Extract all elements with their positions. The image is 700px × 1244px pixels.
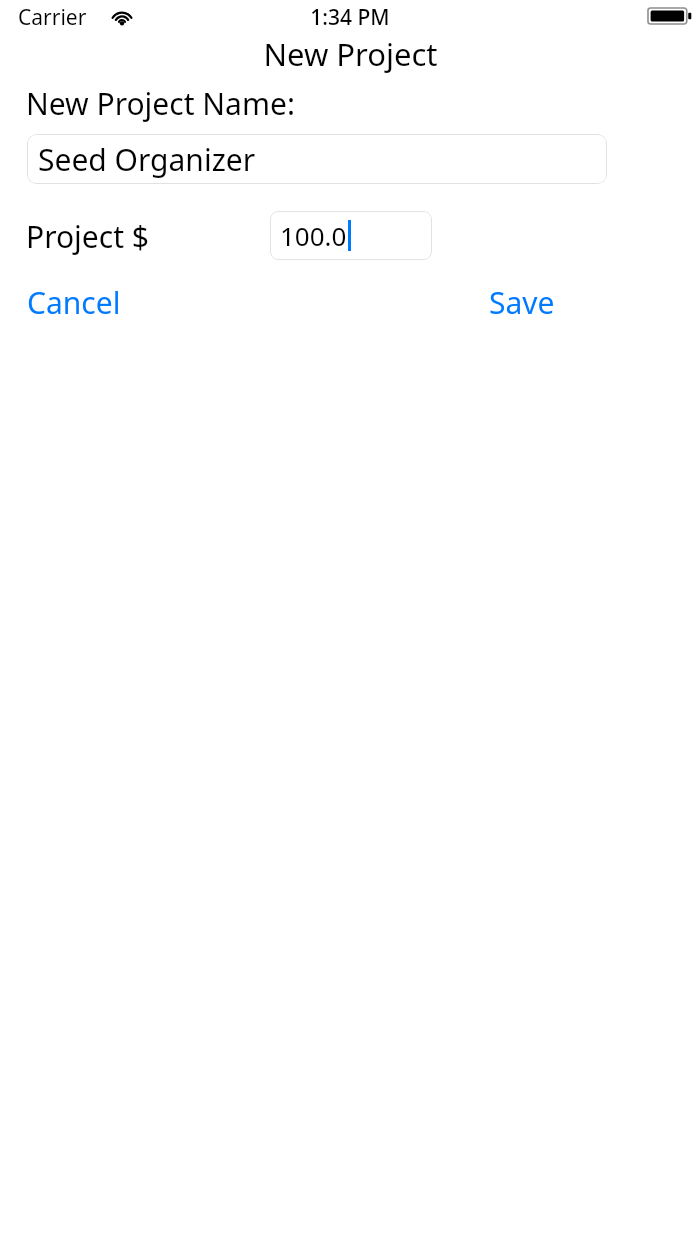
staticText: 1:34 PM [310,3,390,32]
staticText: Cancel [27,282,121,323]
button[interactable]: Seed Organizer [27,134,607,184]
button[interactable]: Cancel [27,282,121,323]
button[interactable]: 100.0 [270,211,432,260]
staticText: Seed Organizer [38,139,256,180]
staticText: New Project [263,33,438,75]
staticText: Project $ [26,216,149,257]
staticText: 100.0 [280,218,347,253]
staticText: New Project Name: [26,83,295,124]
button[interactable]: Save [489,282,555,323]
staticText: Carrier [18,3,87,32]
staticText: Save [489,282,555,323]
